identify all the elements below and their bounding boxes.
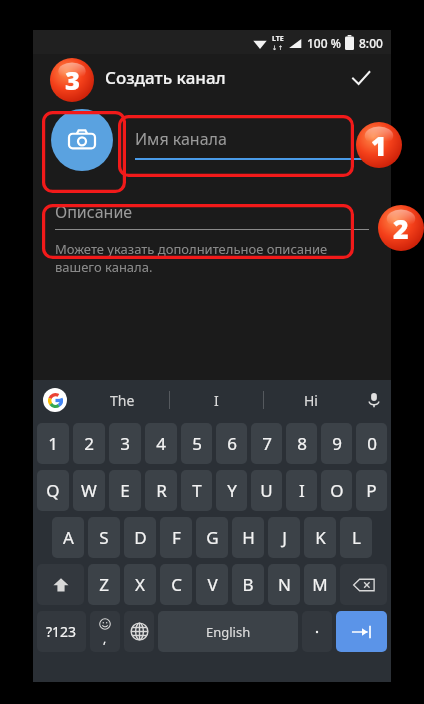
staticText: 5 — [192, 432, 202, 455]
button[interactable]: F — [160, 517, 192, 558]
button[interactable]: 7 — [251, 423, 282, 464]
button[interactable]: Set channel photo — [51, 109, 113, 171]
button[interactable]: Period — [302, 611, 332, 652]
button[interactable]: English — [158, 611, 298, 652]
staticText: D — [134, 526, 147, 549]
button[interactable]: Описание — [55, 195, 369, 230]
button[interactable]: The — [75, 380, 169, 420]
staticText: 2 — [84, 432, 94, 455]
staticText: P — [366, 479, 377, 502]
button[interactable]: 2 — [73, 423, 105, 464]
staticText: B — [242, 573, 254, 596]
button[interactable]: Q — [37, 470, 69, 511]
button[interactable]: V — [196, 564, 228, 605]
button[interactable]: Next field — [336, 611, 387, 652]
button[interactable]: Done — [343, 60, 379, 96]
staticText: 6 — [227, 432, 237, 455]
staticText: Можете указать дополнительное описание в… — [55, 240, 328, 276]
button[interactable]: Z — [88, 564, 120, 605]
button[interactable]: 4 — [145, 423, 177, 464]
button[interactable]: O — [321, 470, 352, 511]
staticText: The — [110, 391, 135, 410]
button[interactable]: P — [356, 470, 387, 511]
button[interactable]: D — [124, 517, 156, 558]
button[interactable]: 0 — [356, 423, 387, 464]
staticText: S — [99, 526, 109, 549]
button[interactable]: T — [181, 470, 212, 511]
button[interactable]: W — [73, 470, 105, 511]
staticText: C — [171, 573, 182, 596]
staticText: V — [207, 573, 218, 596]
staticText: LTE — [272, 34, 284, 44]
button[interactable]: Change language — [124, 611, 154, 652]
staticText: Имя канала — [135, 128, 227, 150]
staticText: E — [120, 479, 130, 502]
button[interactable]: H — [232, 517, 264, 558]
staticText: 9 — [332, 432, 342, 455]
button[interactable]: Voice input — [357, 380, 391, 420]
button[interactable]: C — [160, 564, 192, 605]
staticText: W — [81, 479, 97, 502]
staticText: L — [352, 526, 361, 549]
button[interactable]: 1 — [37, 423, 69, 464]
staticText: English — [206, 623, 251, 641]
button[interactable]: ?123 — [37, 611, 86, 652]
staticText: 4 — [156, 432, 166, 455]
staticText: 7 — [262, 432, 272, 455]
staticText: K — [315, 526, 326, 549]
button[interactable]: M — [304, 564, 336, 605]
button[interactable]: B — [232, 564, 264, 605]
staticText: 1 — [48, 432, 58, 455]
staticText: 100 % — [307, 35, 341, 51]
staticText: N — [278, 573, 291, 596]
button[interactable]: G — [196, 517, 228, 558]
staticText: Hi — [304, 391, 318, 410]
staticText: 8:00 — [359, 35, 383, 51]
staticText: ?123 — [46, 622, 77, 641]
button[interactable]: N — [268, 564, 300, 605]
button[interactable]: 9 — [321, 423, 352, 464]
button[interactable]: Google search — [43, 388, 67, 412]
button[interactable]: I — [286, 470, 317, 511]
button[interactable]: 3 — [109, 423, 141, 464]
staticText: Описание — [55, 201, 133, 223]
button[interactable]: L — [340, 517, 372, 558]
staticText: M — [312, 573, 328, 596]
staticText: 8 — [297, 432, 307, 455]
staticText: I — [214, 391, 219, 410]
button[interactable]: A — [52, 517, 84, 558]
button[interactable]: E — [109, 470, 141, 511]
button[interactable]: Имя канала — [135, 120, 375, 160]
staticText: U — [260, 479, 273, 502]
button[interactable]: 6 — [216, 423, 247, 464]
button[interactable]: Hi — [264, 380, 357, 420]
staticText: G — [206, 526, 219, 549]
staticText: Y — [227, 479, 237, 502]
button[interactable]: S — [88, 517, 120, 558]
button[interactable]: K — [304, 517, 336, 558]
button[interactable]: X — [124, 564, 156, 605]
staticText: F — [172, 526, 181, 549]
staticText: J — [282, 526, 287, 549]
button[interactable]: J — [268, 517, 300, 558]
button[interactable]: 5 — [181, 423, 212, 464]
staticText: R — [156, 479, 167, 502]
button[interactable]: 8 — [286, 423, 317, 464]
staticText: T — [192, 479, 202, 502]
button[interactable]: Backspace — [340, 564, 387, 605]
button[interactable]: I — [170, 380, 263, 420]
staticText: 1 — [371, 127, 387, 163]
button[interactable]: Emoji and comma — [90, 611, 120, 652]
button[interactable]: U — [251, 470, 282, 511]
staticText: ↓ — [272, 44, 278, 51]
button[interactable]: Shift — [37, 564, 84, 605]
staticText: H — [242, 526, 255, 549]
staticText: ↑ — [278, 44, 284, 51]
staticText: I — [299, 479, 305, 502]
staticText: Q — [46, 479, 60, 502]
staticText: , — [103, 630, 107, 646]
staticText: 3 — [120, 432, 130, 455]
staticText: Создать канал — [105, 66, 226, 89]
button[interactable]: Y — [216, 470, 247, 511]
button[interactable]: R — [145, 470, 177, 511]
